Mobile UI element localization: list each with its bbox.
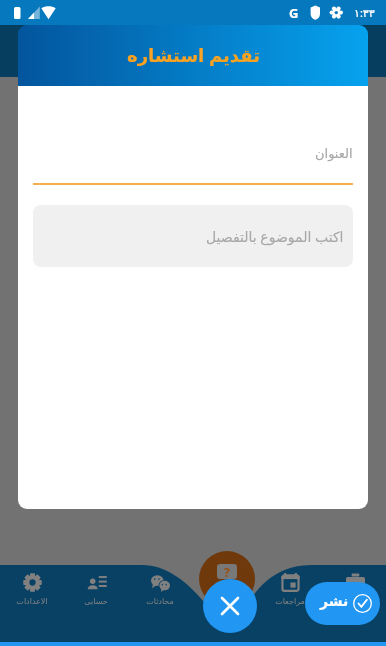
button[interactable]: Help <box>199 551 255 607</box>
staticText: ? <box>224 564 230 579</box>
staticText: محادثات <box>146 597 174 606</box>
staticText: اكتب الموضوع بالتفصيل <box>206 227 344 246</box>
button[interactable]: حسابى <box>64 568 128 606</box>
button[interactable]: نشر <box>305 582 380 625</box>
staticText: حسابى <box>84 597 108 606</box>
staticText: نشر <box>320 593 349 609</box>
staticText: الاعدادات <box>16 597 48 606</box>
button[interactable]: محادثات <box>128 568 192 606</box>
staticText: العنوان <box>315 146 353 161</box>
button[interactable]: الاعدادات <box>0 568 64 606</box>
button[interactable]: اكتب الموضوع بالتفصيل <box>33 205 353 267</box>
staticText: تقديم استشاره <box>127 43 260 68</box>
staticText: G <box>289 4 299 22</box>
staticText: مراجعات <box>275 597 305 606</box>
staticText: ١:٣٣ <box>354 5 375 20</box>
button[interactable] <box>323 568 386 597</box>
button[interactable]: مراجعات <box>258 568 322 606</box>
button[interactable]: Close <box>203 579 257 633</box>
